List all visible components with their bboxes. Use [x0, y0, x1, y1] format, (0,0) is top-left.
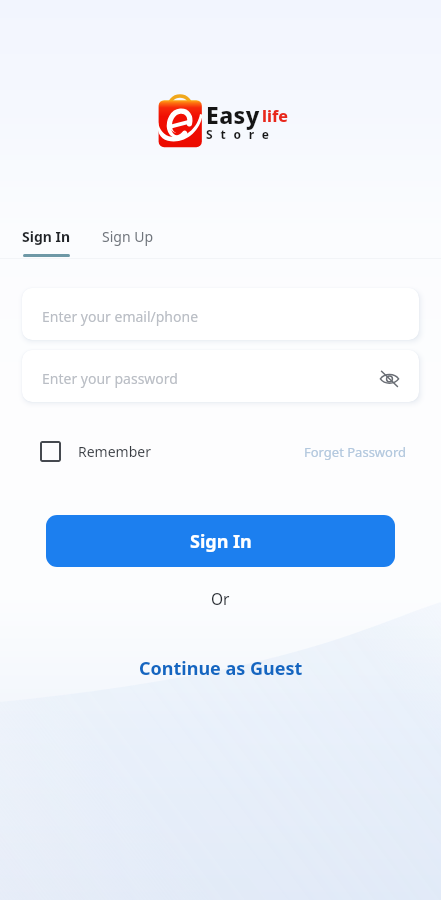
staticText: Enter your password [42, 369, 178, 388]
staticText: Sign In [190, 529, 252, 554]
staticText: Easy [206, 99, 260, 130]
staticText: Or [211, 588, 230, 609]
staticText: Sign In [22, 227, 71, 246]
button[interactable]: Continue as Guest [125, 651, 317, 686]
button[interactable]: Remember [40, 437, 151, 466]
button[interactable]: Enter your email/phone [22, 288, 419, 340]
staticText: Continue as Guest [139, 656, 303, 681]
staticText: Forget Password [304, 443, 407, 461]
staticText: life [262, 105, 289, 127]
staticText: Sign Up [102, 227, 154, 246]
button[interactable]: Sign In [46, 515, 395, 567]
button[interactable]: Forget Password [304, 439, 407, 465]
button[interactable]: Sign Up [98, 219, 158, 254]
button[interactable]: Show password [376, 365, 402, 391]
staticText: Enter your email/phone [42, 307, 199, 326]
button[interactable]: Sign In [18, 219, 75, 254]
staticText: Remember [78, 442, 151, 461]
staticText: Store [206, 126, 277, 142]
button[interactable]: Enter your password [22, 350, 419, 402]
